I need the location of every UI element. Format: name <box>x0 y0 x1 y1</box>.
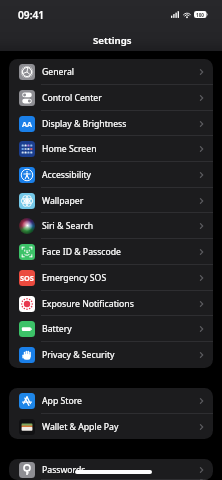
staticText: 09:41 <box>18 8 45 22</box>
staticText: AA <box>22 119 33 129</box>
staticText: SOS <box>20 273 34 283</box>
staticText: Battery <box>42 323 72 335</box>
button[interactable]: SOS <box>9 265 213 291</box>
staticText: Privacy & Security <box>42 349 115 361</box>
button[interactable]: Privacy & Security <box>9 342 213 368</box>
button[interactable]: Face ID & Passcode <box>9 239 213 265</box>
button[interactable]: General <box>9 59 213 85</box>
staticText: Exposure Notifications <box>42 298 134 310</box>
staticText: Emergency SOS <box>42 272 107 284</box>
button[interactable]: Accessibility <box>9 162 213 188</box>
button[interactable]: App Store <box>9 388 213 414</box>
staticText: Passwords <box>42 464 86 476</box>
staticText: Settings <box>93 34 132 47</box>
button[interactable]: Control Center <box>9 85 213 111</box>
button[interactable]: Wallet & Apple Pay <box>9 414 213 439</box>
staticText: App Store <box>42 395 82 407</box>
button[interactable]: Home Screen <box>9 136 213 162</box>
staticText: Home Screen <box>42 143 97 155</box>
staticText: Control Center <box>42 92 102 104</box>
staticText: Display & Brightness <box>42 118 127 130</box>
staticText: Wallet & Apple Pay <box>42 421 119 433</box>
staticText: General <box>42 66 75 78</box>
button[interactable]: Siri & Search <box>9 213 213 239</box>
staticText: 100 <box>196 12 204 18</box>
button[interactable]: Battery <box>9 316 213 342</box>
staticText: Siri & Search <box>42 220 94 232</box>
button[interactable]: Exposure Notifications <box>9 291 213 316</box>
staticText: Face ID & Passcode <box>42 246 121 258</box>
staticText: Accessibility <box>42 169 91 181</box>
button[interactable]: Wallpaper <box>9 188 213 213</box>
button[interactable]: AA <box>9 111 213 136</box>
staticText: Wallpaper <box>42 195 84 207</box>
button[interactable]: Passwords <box>9 459 213 480</box>
